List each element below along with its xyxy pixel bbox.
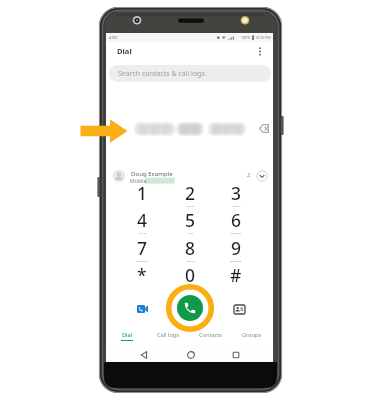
staticText: 8 <box>185 236 196 260</box>
button[interactable]: Contacts <box>189 327 231 341</box>
staticText: 100% <box>241 35 251 40</box>
staticText: Dial <box>122 331 133 339</box>
staticText: 4 <box>137 208 148 232</box>
staticText: 1 <box>137 181 148 205</box>
button[interactable]: Groups <box>231 327 273 341</box>
button[interactable]: Contact card <box>230 300 248 318</box>
button[interactable]: 0 <box>170 263 210 289</box>
button[interactable]: Call logs <box>147 327 189 341</box>
staticText: Mobile <box>130 177 147 184</box>
button[interactable]: 6 <box>216 208 256 234</box>
staticText: AT&T <box>109 35 118 40</box>
staticText: Groups <box>242 331 262 339</box>
button[interactable]: 5 <box>170 208 210 234</box>
button[interactable]: Expand <box>256 170 268 182</box>
button[interactable]: Search contacts & call logs <box>109 65 271 82</box>
button[interactable]: * <box>122 263 162 289</box>
button[interactable]: # <box>216 263 256 289</box>
button[interactable]: 8 <box>170 236 210 262</box>
staticText: 2 <box>247 171 251 179</box>
staticText: 0 <box>185 263 196 287</box>
staticText: ABC <box>186 205 195 207</box>
button[interactable]: Dial <box>106 327 147 341</box>
staticText: Search contacts & call logs <box>118 69 205 79</box>
staticText: 7 <box>137 236 148 260</box>
staticText: PQRS <box>137 260 148 262</box>
staticText: MNO <box>231 232 242 234</box>
staticText: Dial <box>117 46 132 56</box>
staticText: WXYZ <box>230 260 242 262</box>
button[interactable]: 2 <box>170 181 210 207</box>
button[interactable]: 1 <box>122 181 162 207</box>
staticText: Doug Example <box>131 169 173 177</box>
staticText: 3 <box>231 181 242 205</box>
staticText: DEF <box>233 205 241 207</box>
button[interactable]: 9 <box>216 236 256 262</box>
staticText: TUV <box>187 260 195 262</box>
button[interactable]: Doug Example <box>106 165 273 187</box>
staticText: JKL <box>188 232 194 234</box>
staticText: 5 <box>185 208 196 232</box>
staticText: 2 <box>185 181 196 205</box>
staticText: # <box>230 263 242 287</box>
button[interactable]: Video call <box>133 300 151 318</box>
button[interactable]: Backspace <box>257 122 271 136</box>
staticText: * <box>137 263 147 287</box>
staticText: GHI <box>139 232 147 234</box>
button[interactable]: Recents <box>229 348 243 362</box>
button[interactable]: Back <box>137 348 151 362</box>
button[interactable]: 3 <box>216 181 256 207</box>
button[interactable]: More options <box>253 44 267 58</box>
button[interactable]: Call <box>177 295 203 321</box>
button[interactable]: 7 <box>122 236 162 262</box>
staticText: 10:36 PM <box>255 35 271 40</box>
staticText: 6 <box>231 208 242 232</box>
staticText: Call logs <box>157 331 179 339</box>
staticText: Contacts <box>199 331 222 339</box>
staticText: 9 <box>231 236 242 260</box>
button[interactable]: 4 <box>122 208 162 234</box>
button[interactable]: Home <box>184 348 198 362</box>
